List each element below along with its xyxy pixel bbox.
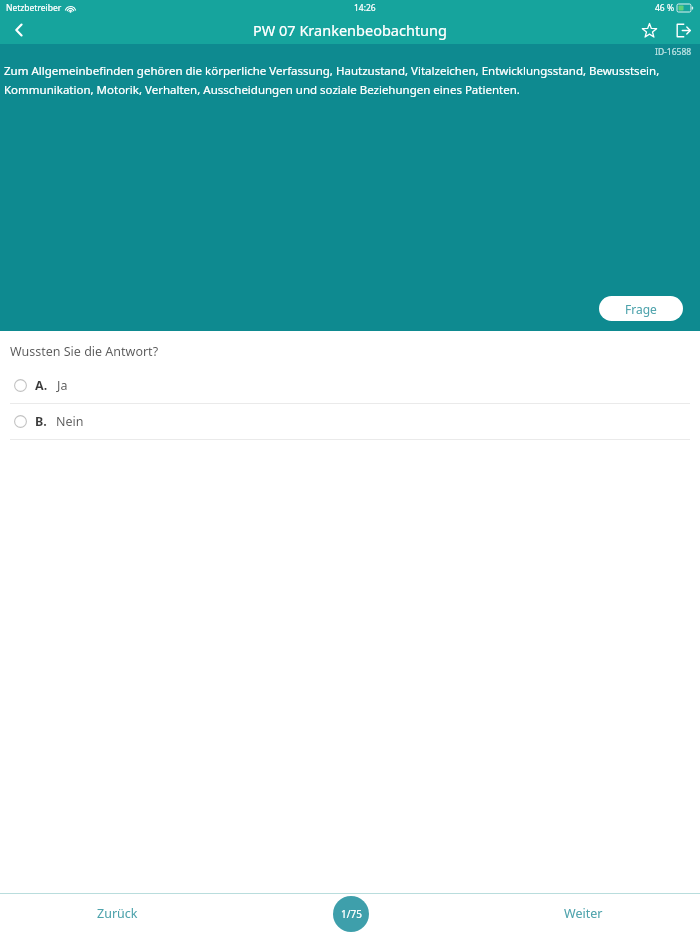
button[interactable]: Back: [0, 16, 38, 44]
staticText: Netzbetreiber: [6, 2, 62, 14]
button[interactable]: Frage: [599, 296, 683, 321]
staticText: Weiter: [564, 905, 603, 922]
staticText: Ja: [57, 377, 68, 394]
staticText: 46 %: [655, 2, 674, 14]
button[interactable]: B.: [0, 404, 700, 439]
button[interactable]: Exit: [666, 16, 700, 44]
button[interactable]: Zurück: [0, 893, 234, 934]
staticText: B.: [35, 413, 47, 430]
staticText: A.: [35, 377, 48, 394]
button[interactable]: 1/75: [333, 896, 369, 932]
staticText: Nein: [56, 413, 84, 430]
staticText: ID-16588: [655, 46, 692, 58]
staticText: 14:26: [354, 2, 376, 14]
staticText: 1/75: [341, 907, 362, 921]
staticText: Kommunikation, Motorik, Verhalten, Aussc…: [4, 82, 520, 98]
button[interactable]: Favorite: [632, 16, 666, 44]
button[interactable]: A.: [0, 368, 700, 403]
staticText: Wussten Sie die Antwort?: [10, 343, 159, 360]
button[interactable]: Weiter: [467, 893, 700, 934]
staticText: PW 07 Krankenbeobachtung: [253, 20, 447, 40]
staticText: Frage: [625, 301, 657, 317]
staticText: Zum Allgemeinbefinden gehören die körper…: [4, 63, 660, 79]
staticText: Zurück: [97, 905, 138, 922]
